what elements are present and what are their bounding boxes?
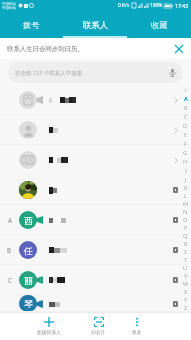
staticText: H <box>183 158 188 166</box>
button[interactable]: Y <box>180 296 191 304</box>
staticText: C <box>184 113 188 121</box>
button[interactable]: 联系人 <box>63 0 127 38</box>
staticText: 0 K/s <box>118 2 130 9</box>
button[interactable]: S <box>180 248 191 256</box>
staticText: 联系人生日会同步到日历。 <box>7 45 84 53</box>
staticText: J <box>185 176 187 184</box>
staticText: P <box>184 224 188 232</box>
button[interactable]: N <box>180 208 191 216</box>
button[interactable]: 琴 <box>0 295 191 312</box>
staticText: I <box>185 167 187 175</box>
button[interactable]: A <box>0 205 191 235</box>
button[interactable]: M <box>180 200 191 208</box>
button[interactable]: 在全部 123 个联系人中搜索 <box>8 62 183 83</box>
staticText: A <box>8 216 12 224</box>
button[interactable]: W <box>180 280 191 288</box>
staticText: 收藏 <box>151 20 168 30</box>
staticText: 中国移动 <box>2 2 16 6</box>
staticText: 西 <box>24 215 33 226</box>
staticText: U <box>183 264 188 272</box>
staticText: 17:43 <box>175 2 189 9</box>
button[interactable]: I <box>180 166 191 175</box>
staticText: E <box>184 131 188 139</box>
button[interactable]: F <box>180 139 191 148</box>
staticText: X <box>184 288 188 296</box>
staticText: M <box>183 200 189 208</box>
button[interactable]: 收藏 <box>127 0 191 38</box>
button[interactable] <box>0 145 191 175</box>
staticText: Q <box>183 232 188 240</box>
staticText: Z <box>184 304 188 312</box>
staticText: V <box>184 272 188 280</box>
staticText: F <box>184 140 187 148</box>
button[interactable]: H <box>180 157 191 166</box>
button[interactable]: ☆ <box>180 85 191 94</box>
staticText: B <box>7 246 12 254</box>
staticText: 任 <box>24 245 33 256</box>
button[interactable]: Q <box>180 232 191 240</box>
button[interactable]: 新建联系人 <box>27 312 71 340</box>
button[interactable]: R <box>180 240 191 248</box>
staticText: G <box>183 149 188 157</box>
staticText: L <box>184 192 187 200</box>
button[interactable]: B <box>0 235 191 265</box>
staticText: B <box>184 104 188 112</box>
staticText: R <box>184 240 188 248</box>
staticText: N <box>183 208 188 216</box>
button[interactable]: O <box>180 216 191 224</box>
button[interactable]: V <box>180 272 191 280</box>
button[interactable] <box>0 175 191 205</box>
staticText: 中国移动 <box>2 6 16 10</box>
button[interactable]: 语音搜索 <box>167 67 178 78</box>
button[interactable]: 扫名片 <box>87 312 110 340</box>
button[interactable]: C <box>180 112 191 121</box>
button[interactable]: P <box>180 224 191 232</box>
button[interactable]: J <box>180 175 191 184</box>
button[interactable]: 更多 <box>125 312 148 340</box>
button[interactable] <box>0 85 191 115</box>
staticText: 丽 <box>24 275 33 286</box>
staticText: 拨号 <box>23 20 40 30</box>
button[interactable] <box>0 115 191 145</box>
staticText: D <box>183 122 188 130</box>
staticText: 100% <box>150 2 163 9</box>
staticText: W <box>183 280 189 288</box>
staticText: 新建联系人 <box>37 329 61 335</box>
button[interactable]: 拨号 <box>0 0 63 38</box>
staticText: K <box>184 184 188 192</box>
button[interactable]: U <box>180 264 191 272</box>
button[interactable]: D <box>180 121 191 130</box>
button[interactable]: G <box>180 148 191 157</box>
button[interactable]: B <box>180 103 191 112</box>
staticText: A <box>184 95 188 103</box>
button[interactable]: E <box>180 130 191 139</box>
staticText: S <box>184 248 188 256</box>
button[interactable]: A <box>180 94 191 103</box>
staticText: 在全部 123 个联系人中搜索 <box>15 69 83 77</box>
button[interactable]: T <box>180 256 191 264</box>
staticText: 联系人 <box>83 20 108 30</box>
staticText: C <box>8 276 12 284</box>
staticText: T <box>184 256 188 264</box>
staticText: Y <box>184 296 188 304</box>
button[interactable]: 关闭提示 <box>171 41 187 57</box>
staticText: 扫名片 <box>91 329 106 335</box>
button[interactable]: Z <box>180 304 191 312</box>
button[interactable]: K <box>180 184 191 192</box>
button[interactable]: X <box>180 288 191 296</box>
button[interactable]: C <box>0 265 191 295</box>
staticText: 更多 <box>132 329 142 335</box>
button[interactable]: L <box>180 192 191 200</box>
staticText: ☆ <box>183 87 188 93</box>
staticText: 琴 <box>24 298 33 309</box>
staticText: O <box>183 216 188 224</box>
